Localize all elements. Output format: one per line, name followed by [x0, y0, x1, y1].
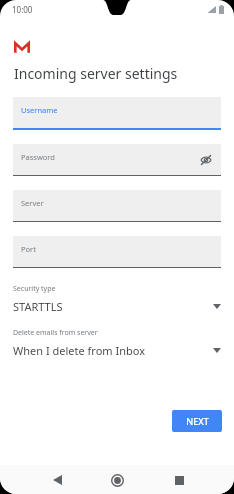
- staticText: Port: [21, 244, 36, 254]
- staticText: 10:00: [12, 4, 33, 15]
- staticText: Server: [21, 198, 44, 208]
- staticText: Username: [21, 105, 58, 115]
- button[interactable]: Password: [13, 144, 221, 176]
- button[interactable]: Show password: [199, 153, 213, 167]
- button[interactable]: Security type: [0, 284, 234, 314]
- button[interactable]: NEXT: [172, 410, 222, 432]
- staticText: STARTTLS: [13, 299, 213, 314]
- staticText: Security type: [13, 284, 56, 294]
- staticText: Password: [21, 152, 55, 162]
- button[interactable]: Back: [46, 469, 68, 491]
- staticText: Delete emails from server: [13, 328, 98, 338]
- staticText: Incoming server settings: [14, 64, 178, 83]
- button[interactable]: Username: [13, 97, 221, 130]
- button[interactable]: Delete emails from server: [0, 328, 234, 358]
- staticText: NEXT: [186, 415, 209, 427]
- button[interactable]: Home: [106, 469, 128, 491]
- button[interactable]: Server: [13, 190, 221, 222]
- button[interactable]: Recent apps: [168, 469, 190, 491]
- button[interactable]: Port: [13, 236, 221, 268]
- staticText: When I delete from Inbox: [13, 343, 213, 358]
